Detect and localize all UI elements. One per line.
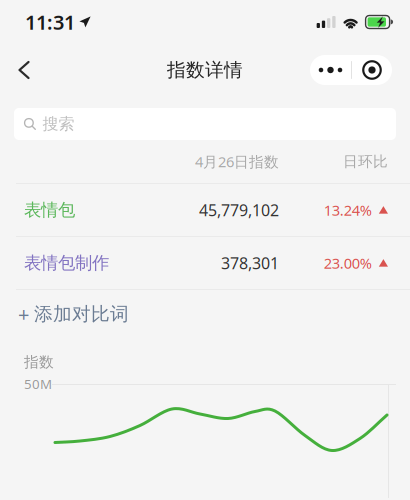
staticText: 13.24% [324,200,372,220]
staticText: + [18,301,29,327]
button[interactable]: 表情包制作 [0,237,410,289]
staticText: 指数详情 [167,58,243,81]
button[interactable]: + [0,290,410,338]
staticText: 表情包制作 [24,252,109,274]
staticText: 50M [24,375,52,393]
staticText: 45,779,102 [199,199,279,221]
staticText: 添加对比词 [34,302,129,325]
staticText: 搜索 [42,114,74,134]
staticText: 日环比 [343,152,388,170]
button[interactable]: 表情包 [0,184,410,236]
staticText: 23.00% [324,253,372,273]
staticText: 指数 [24,353,54,371]
staticText: 4月26日指数 [195,152,279,171]
staticText: 378,301 [221,252,279,274]
staticText: 11:31 [25,9,75,35]
button[interactable]: 返回 [0,48,58,92]
staticText: 表情包 [24,199,75,221]
button[interactable]: 搜索 [14,108,396,140]
button[interactable]: 更多 [310,55,392,85]
